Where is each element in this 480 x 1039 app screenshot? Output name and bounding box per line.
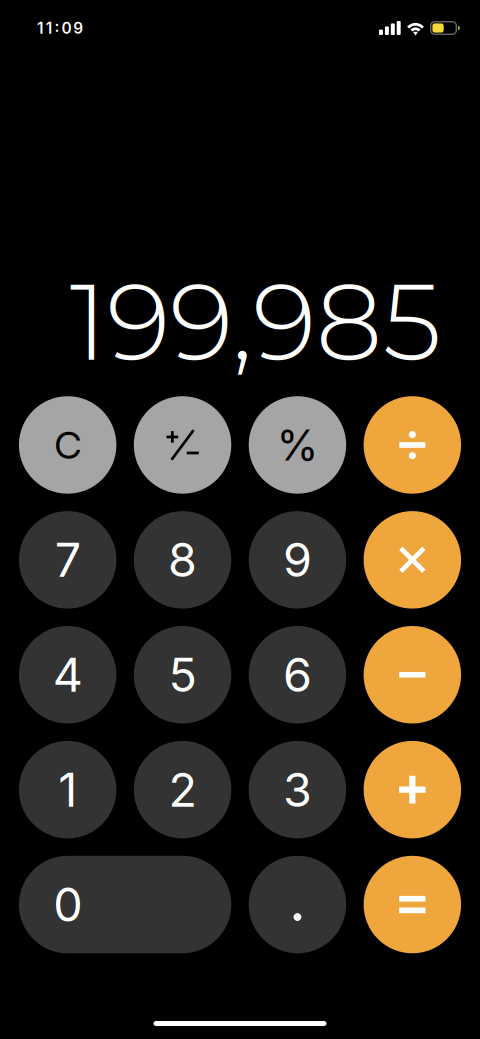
staticText: 3 bbox=[283, 761, 312, 818]
button[interactable]: Plus minus bbox=[134, 396, 231, 494]
button[interactable]: 8 bbox=[134, 511, 231, 609]
button[interactable]: 3 bbox=[249, 741, 346, 838]
button[interactable]: Add bbox=[364, 741, 461, 838]
button[interactable]: Divide bbox=[364, 396, 461, 494]
staticText: 6 bbox=[283, 646, 312, 703]
button[interactable]: C bbox=[19, 396, 116, 494]
staticText: 8 bbox=[168, 532, 197, 588]
staticText: 5 bbox=[169, 646, 197, 703]
button[interactable]: 1 bbox=[19, 741, 116, 838]
staticText: 7 bbox=[55, 532, 81, 588]
button[interactable]: 4 bbox=[19, 626, 116, 723]
button[interactable]: % bbox=[249, 396, 346, 494]
staticText: 9 bbox=[283, 532, 312, 588]
button[interactable]: 7 bbox=[19, 511, 116, 609]
staticText: % bbox=[276, 419, 318, 471]
staticText: 0 bbox=[53, 876, 82, 933]
button[interactable]: Decimal point bbox=[249, 856, 346, 953]
staticText: 11:09 bbox=[37, 19, 83, 37]
staticText: 2 bbox=[169, 761, 197, 818]
button[interactable]: Equals bbox=[364, 856, 461, 953]
button[interactable]: 9 bbox=[249, 511, 346, 609]
staticText: 4 bbox=[53, 646, 83, 703]
staticText: 199,985 bbox=[70, 258, 442, 386]
button[interactable]: 0 bbox=[19, 856, 231, 953]
button[interactable]: 5 bbox=[134, 626, 231, 723]
staticText: C bbox=[54, 422, 81, 468]
button[interactable]: 6 bbox=[249, 626, 346, 723]
button[interactable]: Subtract bbox=[364, 626, 461, 723]
button[interactable]: Multiply bbox=[364, 511, 461, 609]
staticText: 1 bbox=[58, 761, 77, 818]
button[interactable]: 2 bbox=[134, 741, 231, 838]
